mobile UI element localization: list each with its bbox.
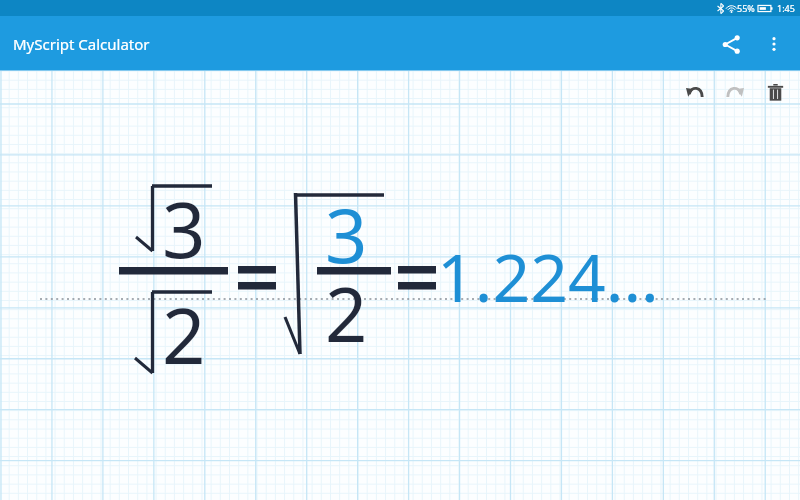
staticText: 55% <box>737 2 755 14</box>
staticText: 1.224... <box>437 231 659 321</box>
button[interactable]: More options <box>754 24 794 64</box>
button[interactable]: Delete <box>755 72 795 112</box>
button[interactable]: Share <box>708 21 754 67</box>
staticText: 3 <box>162 177 206 281</box>
staticText: 3 <box>325 184 368 285</box>
staticText: 2 <box>162 283 206 387</box>
staticText: MyScript Calculator <box>13 34 150 54</box>
staticText: 2 <box>325 263 368 364</box>
staticText: 1:45 <box>777 2 795 14</box>
button[interactable]: Undo <box>675 72 715 112</box>
button[interactable]: Redo <box>715 72 755 112</box>
